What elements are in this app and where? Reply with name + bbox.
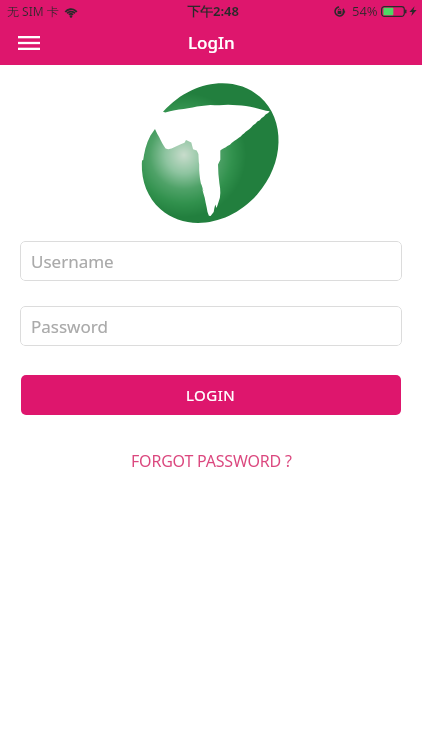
staticText: 无 SIM 卡 bbox=[7, 3, 59, 19]
button[interactable]: Username bbox=[20, 241, 402, 281]
staticText: LogIn bbox=[188, 31, 235, 54]
button[interactable]: LOGIN bbox=[21, 375, 401, 415]
staticText: 54% bbox=[352, 2, 378, 20]
staticText: Username bbox=[31, 250, 114, 273]
staticText: 下午2:48 bbox=[187, 2, 239, 20]
button[interactable]: Password bbox=[20, 306, 402, 346]
staticText: Password bbox=[31, 315, 108, 338]
staticText: FORGOT PASSWORD ? bbox=[131, 450, 292, 472]
button[interactable]: Menu bbox=[8, 23, 50, 63]
button[interactable]: FORGOT PASSWORD ? bbox=[121, 444, 302, 478]
staticText: LOGIN bbox=[186, 385, 236, 405]
